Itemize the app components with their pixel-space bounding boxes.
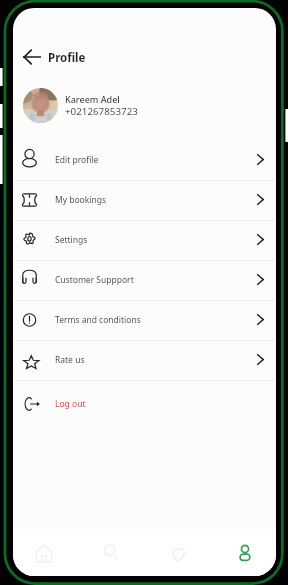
staticText: Profile [48,50,86,66]
button[interactable]: Log out [13,381,276,420]
button[interactable]: Terms and conditions [13,301,276,340]
staticText: Rate us [55,354,85,366]
button[interactable]: My bookings [13,181,276,220]
button[interactable]: Profile [210,529,276,576]
staticText: Log out [55,398,86,410]
button[interactable]: Back [20,46,44,70]
button[interactable]: Home [13,529,78,576]
staticText: Terms and conditions [55,314,141,326]
staticText: +021267853723 [65,105,138,118]
staticText: Settings [55,234,88,246]
button[interactable]: Customer Suppport [13,261,276,300]
button[interactable]: Settings [13,221,276,260]
staticText: Kareem Adel [65,93,120,105]
button[interactable]: Rate us [13,341,276,380]
staticText: Edit profile [55,154,99,166]
staticText: Customer Suppport [55,274,134,286]
staticText: My bookings [55,194,107,206]
button[interactable]: Edit profile [13,141,276,180]
